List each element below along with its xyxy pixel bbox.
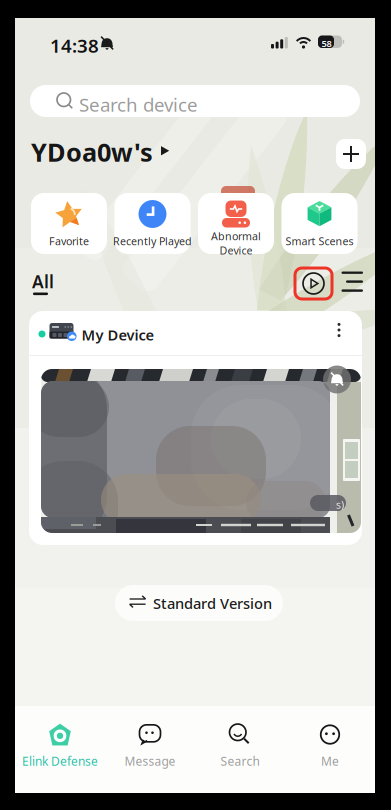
button[interactable]: Search device [30,85,360,117]
button[interactable]: List view [341,271,363,292]
button[interactable]: Smart Scenes [281,193,357,254]
staticText: Search [220,753,259,769]
staticText: Me [321,753,339,769]
staticText: All [32,270,54,293]
staticText: Recently Played [113,234,192,248]
button[interactable]: YDoa0w's [31,139,167,169]
staticText: Device [219,243,252,257]
button[interactable]: Favorite [31,193,107,254]
staticText: Elink Defense [22,753,98,769]
staticText: Message [124,753,175,769]
button[interactable]: Add device [336,139,366,169]
button[interactable]: Search [195,718,285,774]
button[interactable]: Elink Defense [15,718,105,774]
button[interactable]: Standard Version [115,585,283,621]
staticText: 58 [321,37,331,50]
button[interactable]: My Device live view [41,369,361,533]
button[interactable]: Mute notifications [323,365,351,393]
staticText: Standard Version [153,593,272,613]
staticText: Favorite [49,234,89,248]
staticText: YDoa0w's [31,135,153,169]
staticText: s) [336,497,344,512]
button[interactable]: Play all [295,268,332,299]
button[interactable]: Recently Played [114,193,190,254]
button[interactable]: Abnormal [198,193,274,254]
button[interactable]: Me [285,718,375,774]
staticText: Abnormal [211,229,261,243]
button[interactable]: All [32,272,58,296]
staticText: 14:38 [50,33,99,58]
button[interactable]: More options [329,318,349,342]
staticText: Smart Scenes [285,234,353,248]
staticText: Search device [79,92,198,117]
staticText: My Device [81,325,154,344]
button[interactable]: Message [105,718,195,774]
